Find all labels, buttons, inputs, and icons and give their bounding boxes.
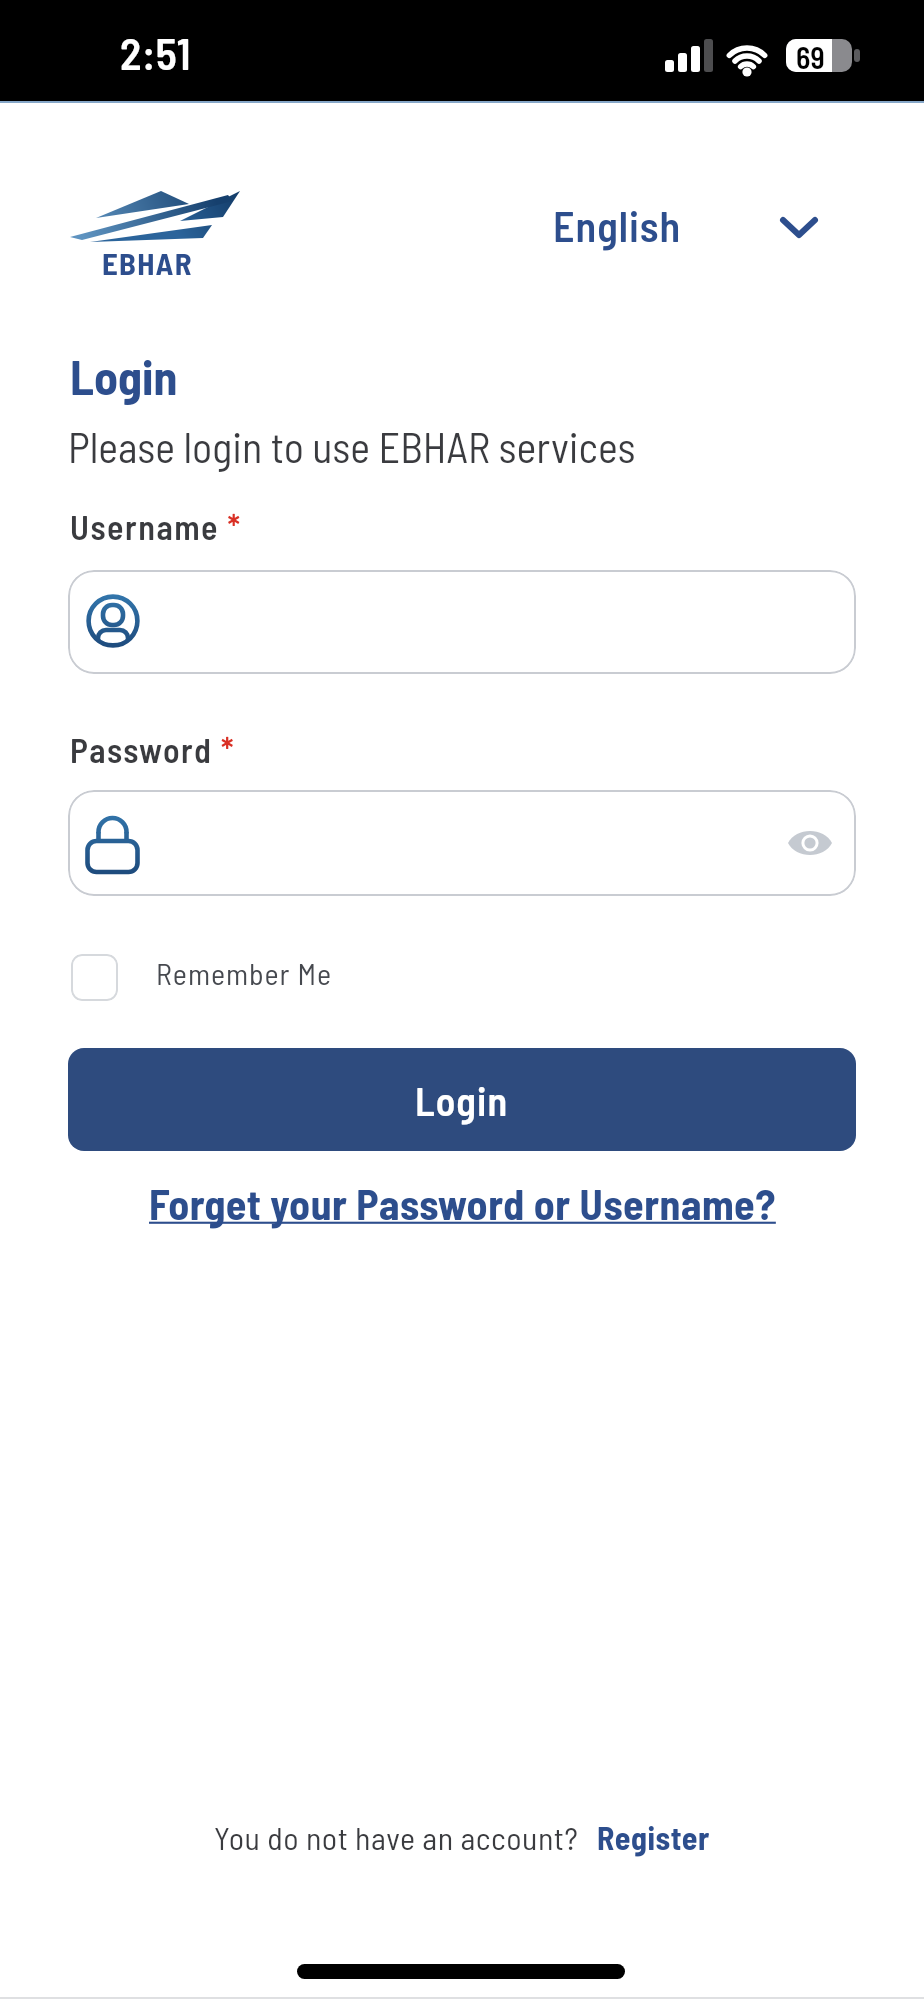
button[interactable]: Forget your Password or Username? bbox=[149, 1178, 776, 1228]
staticText: 69 bbox=[796, 39, 825, 75]
staticText: Remember Me bbox=[156, 955, 333, 991]
staticText: Username * bbox=[70, 506, 242, 547]
staticText: EBHAR bbox=[102, 244, 193, 281]
staticText: Please login to use EBHAR services bbox=[68, 421, 636, 471]
button[interactable] bbox=[788, 826, 832, 860]
staticText: Password * bbox=[70, 729, 236, 770]
button[interactable] bbox=[68, 790, 856, 896]
button[interactable] bbox=[71, 954, 118, 1001]
staticText: 2:51 bbox=[120, 26, 191, 79]
button[interactable]: Register bbox=[597, 1818, 710, 1856]
button[interactable]: Login bbox=[68, 1048, 856, 1151]
button[interactable] bbox=[68, 570, 856, 674]
button[interactable]: English bbox=[540, 200, 816, 250]
staticText: You do not have an account? bbox=[214, 1818, 579, 1856]
staticText: Login bbox=[70, 347, 178, 405]
staticText: English bbox=[553, 200, 682, 250]
staticText: Login bbox=[415, 1076, 509, 1124]
